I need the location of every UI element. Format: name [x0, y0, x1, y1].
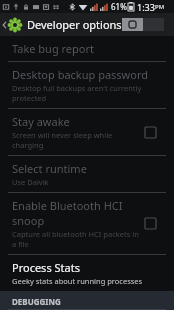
staticText: Use Dalvik [12, 177, 49, 187]
staticText: PM [155, 3, 165, 11]
button[interactable]: Enable Bluetooth HCI snoop [0, 193, 174, 254]
staticText: Developer options [27, 17, 122, 32]
staticText: Take bug report [12, 41, 94, 56]
staticText: Capture all bluetooth HCI packets in a f… [12, 229, 139, 249]
staticText: Stay awake [12, 114, 70, 129]
button[interactable]: Desktop backup password [0, 62, 174, 108]
staticText: 1:33 [137, 1, 155, 13]
staticText: Geeky stats about running processes [12, 276, 143, 286]
button[interactable]: Stay awake [0, 109, 174, 155]
staticText: Screen will never sleep while charging [12, 130, 113, 150]
button[interactable]: Toggle developer options [122, 18, 174, 31]
staticText: 61% [111, 1, 127, 12]
button[interactable]: Process Stats [0, 255, 174, 291]
button[interactable]: Navigate up [0, 18, 24, 32]
staticText: DEBUGGING [12, 296, 61, 307]
staticText: Select runtime [12, 161, 87, 176]
button[interactable]: Take bug report [0, 36, 174, 61]
staticText: Desktop backup password [12, 67, 149, 82]
staticText: Enable Bluetooth HCI snoop [12, 198, 141, 228]
staticText: Process Stats [12, 260, 80, 275]
staticText: Desktop full backups aren't currently pr… [12, 83, 142, 103]
button[interactable]: Select runtime [0, 156, 174, 192]
